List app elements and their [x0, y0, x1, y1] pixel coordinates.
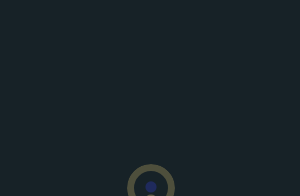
button[interactable]: Account [127, 164, 175, 196]
